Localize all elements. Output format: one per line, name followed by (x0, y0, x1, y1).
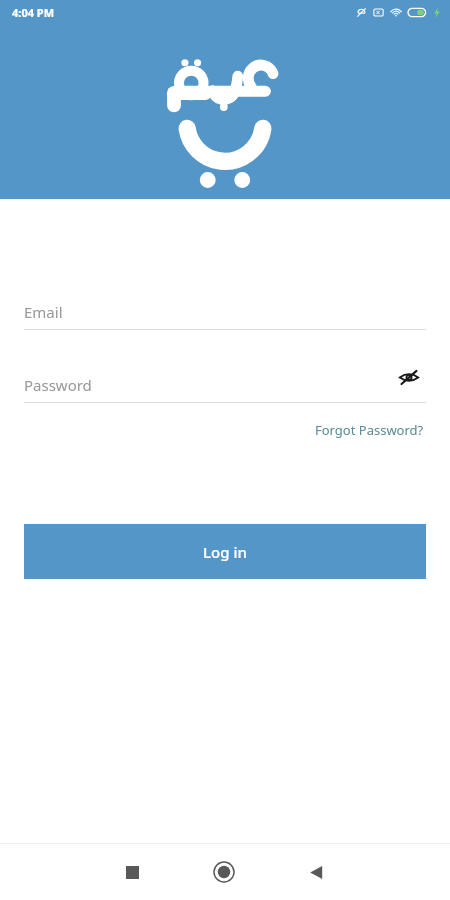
staticText: Log in (203, 542, 247, 562)
button[interactable]: Email (24, 295, 426, 330)
button[interactable]: Recent apps (104, 844, 160, 900)
button[interactable]: Log in (24, 524, 426, 579)
staticText: Email (24, 302, 63, 322)
button[interactable]: Back (288, 844, 344, 900)
staticText: Forgot Password? (315, 421, 424, 439)
staticText: 4:04 PM (12, 5, 55, 20)
button[interactable]: Forgot Password? (313, 417, 426, 443)
button[interactable]: Show password (392, 360, 426, 394)
staticText: Password (24, 375, 92, 395)
button[interactable]: Home (196, 844, 252, 900)
button[interactable]: Password (24, 368, 426, 402)
